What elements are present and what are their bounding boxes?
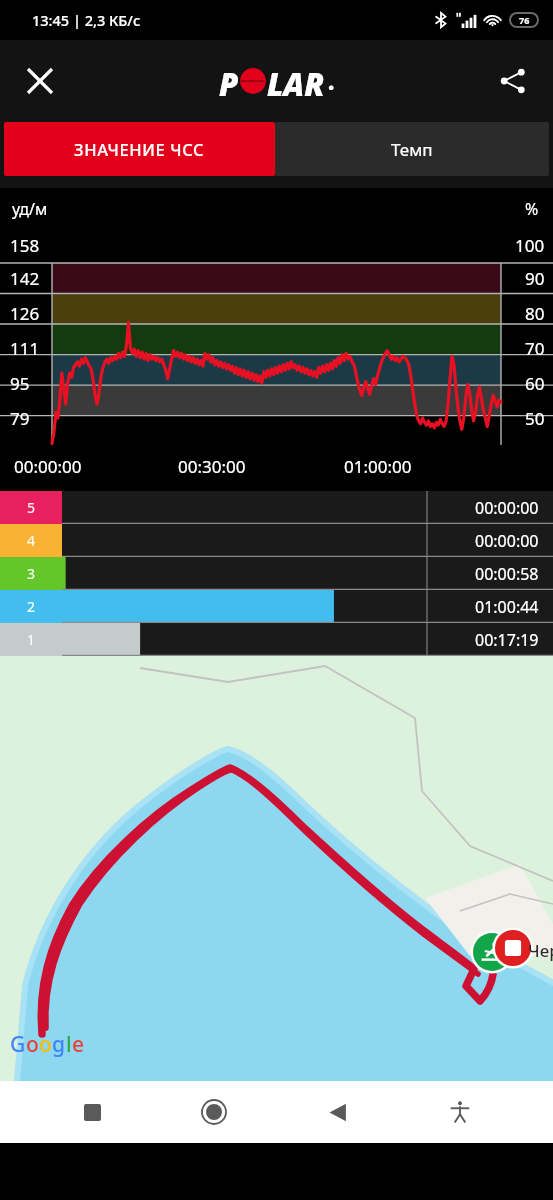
staticText: 00:00:58 (475, 563, 539, 585)
button[interactable]: 4 (0, 524, 553, 557)
staticText: 4 (27, 531, 36, 550)
staticText: 5 (27, 498, 36, 517)
staticText: 70 (525, 337, 545, 360)
staticText: P (219, 63, 239, 99)
staticText: 3 (27, 564, 36, 583)
staticText: 00:00:00 (475, 497, 539, 519)
staticText: 158 (10, 234, 40, 257)
staticText: g (52, 1030, 66, 1059)
staticText: 111 (10, 337, 40, 360)
button[interactable]: Accessibility (432, 1084, 488, 1140)
staticText: 1 (27, 630, 36, 649)
button[interactable]: 5 (0, 491, 553, 524)
staticText: 00:30:00 (178, 455, 246, 478)
staticText: ЗНАЧЕНИЕ ЧСС (74, 138, 205, 160)
button[interactable]: Close (14, 55, 66, 107)
staticText: LAR (267, 63, 325, 99)
staticText: Темп (391, 138, 433, 161)
staticText: 90 (525, 267, 545, 290)
button[interactable]: 3 (0, 557, 553, 590)
staticText: 00:00:00 (14, 455, 82, 478)
staticText: 01:00:44 (475, 596, 539, 618)
staticText: 00:17:19 (475, 629, 539, 651)
button[interactable]: ЗНАЧЕНИЕ ЧСС (4, 122, 275, 176)
staticText: 126 (10, 302, 40, 325)
button[interactable]: Share (487, 55, 539, 107)
staticText: 13:45 | 2,3 КБ/с (32, 10, 141, 30)
staticText: % (525, 198, 539, 220)
button[interactable]: Route map (0, 656, 553, 1081)
button[interactable]: 1 (0, 623, 553, 656)
staticText: . (328, 66, 335, 96)
staticText: 76 (519, 14, 530, 26)
staticText: 00:00:00 (475, 530, 539, 552)
button[interactable]: 2 (0, 590, 553, 623)
staticText: уд/м (12, 198, 48, 220)
staticText: 2 (27, 597, 36, 616)
staticText: o (26, 1030, 39, 1059)
button[interactable]: Recent apps (64, 1084, 120, 1140)
button[interactable]: Home (186, 1084, 242, 1140)
staticText: 60 (525, 372, 545, 395)
staticText: 79 (10, 407, 30, 430)
staticText: G (10, 1030, 26, 1059)
staticText: 100 (515, 234, 545, 257)
staticText: l (66, 1030, 72, 1059)
staticText: 80 (525, 302, 545, 325)
staticText: o (39, 1030, 52, 1059)
staticText: 142 (10, 267, 40, 290)
staticText: 95 (10, 372, 30, 395)
staticText: Чер (528, 939, 553, 962)
button[interactable]: Темп (275, 122, 549, 176)
staticText: 01:00:00 (344, 455, 412, 478)
staticText: e (72, 1030, 85, 1059)
staticText: 50 (525, 407, 545, 430)
button[interactable]: Back (309, 1084, 365, 1140)
